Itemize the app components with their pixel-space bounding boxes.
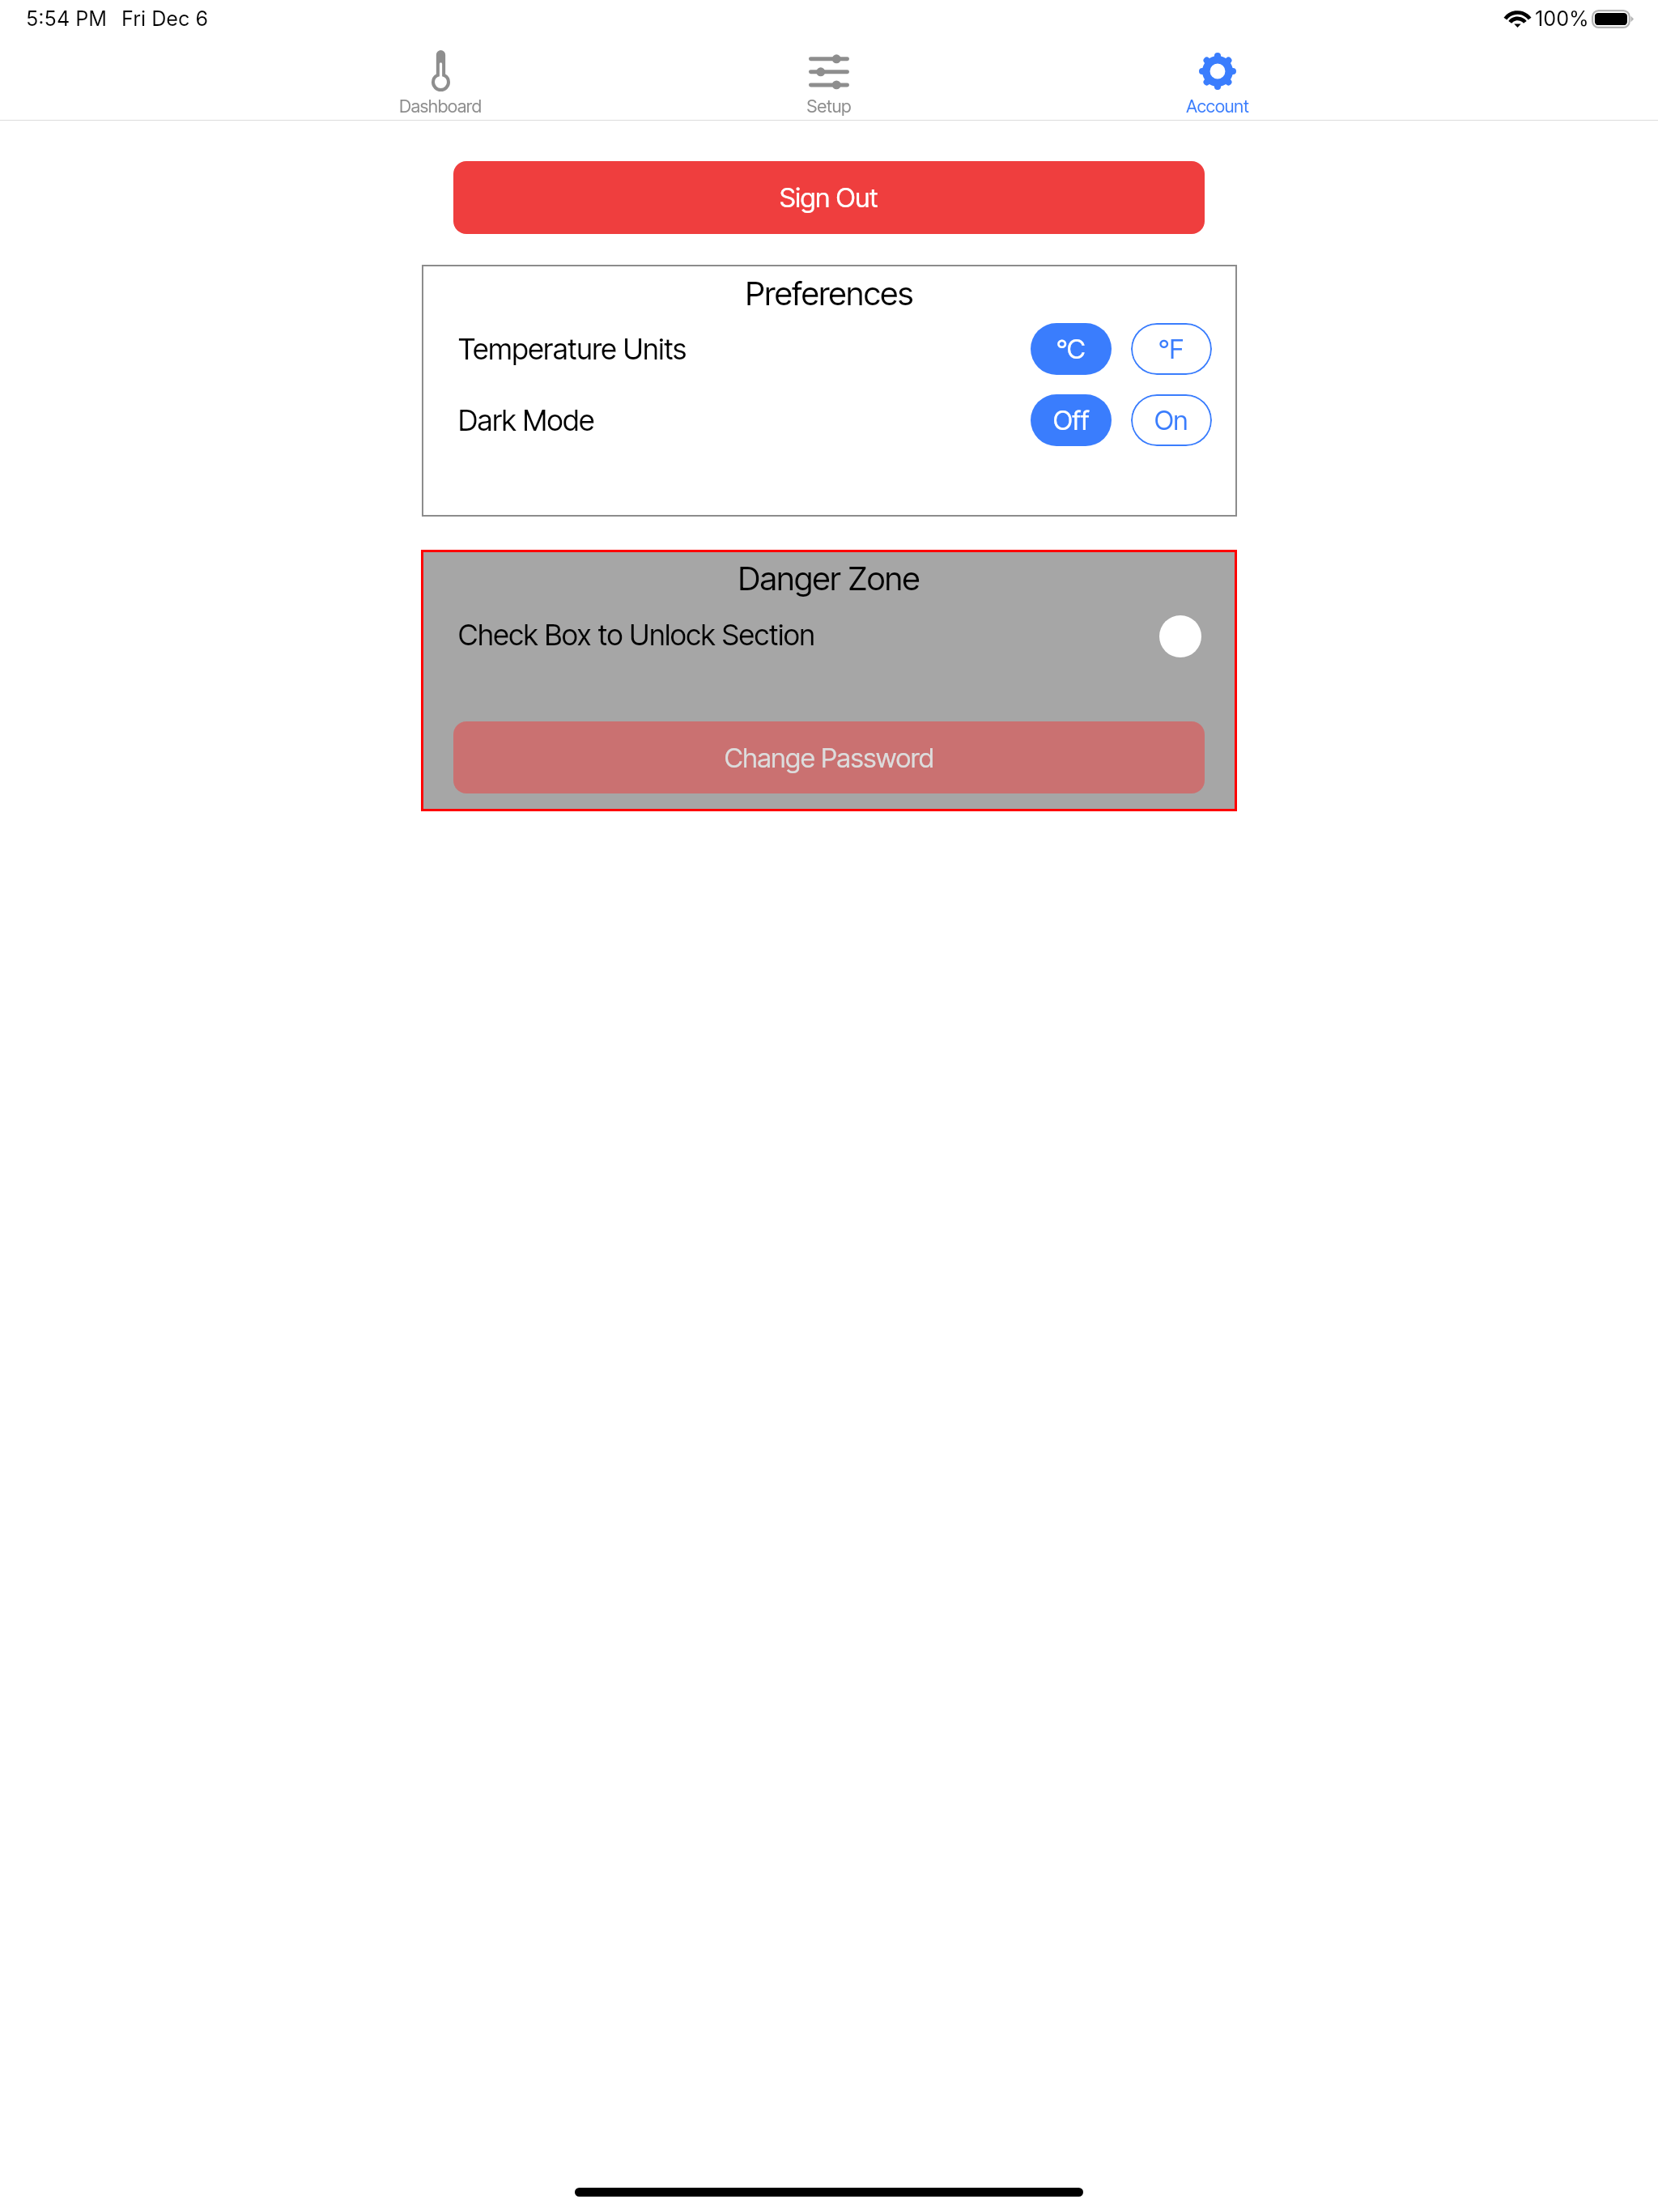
button[interactable]: °C [1031,323,1112,375]
staticText: Dark Mode [458,403,595,438]
staticText: Danger Zone [421,559,1237,598]
staticText: Account [1023,96,1412,117]
button[interactable]: Off [1031,394,1112,446]
staticText: Temperature Units [458,332,687,367]
staticText: Preferences [422,274,1237,313]
staticText: Change Password [725,742,934,774]
button[interactable]: Sign Out [453,161,1205,234]
staticText: Setup [635,96,1023,117]
button[interactable]: Dashboard [246,0,635,120]
button[interactable]: Setup [635,0,1023,120]
staticText: Fri Dec 6 [121,6,209,31]
button[interactable]: On [1131,394,1212,446]
staticText: Sign Out [780,181,878,214]
staticText: °F [1158,333,1184,365]
staticText: °C [1056,333,1086,365]
staticText: 5:54 PM [26,6,108,31]
button[interactable]: Unlock section checkbox [1159,615,1201,657]
button[interactable]: Change Password [453,721,1205,793]
staticText: On [1154,404,1188,436]
staticText: Off [1053,404,1090,436]
staticText: Check Box to Unlock Section [458,618,815,653]
button[interactable]: Account [1023,0,1412,120]
staticText: 100% [1535,6,1589,31]
button[interactable]: °F [1131,323,1212,375]
staticText: Dashboard [246,96,635,117]
